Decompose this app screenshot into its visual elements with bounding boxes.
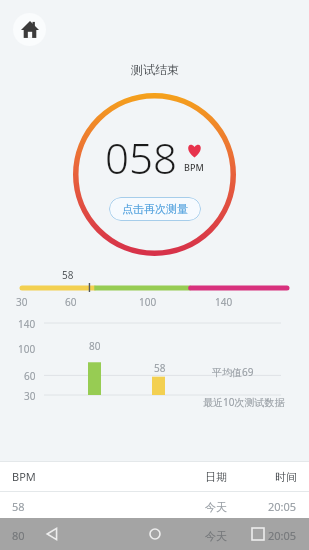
staticText: 点击再次测量: [122, 202, 188, 216]
staticText: 平均值69: [212, 365, 254, 379]
staticText: 80: [12, 528, 25, 543]
staticText: 58: [62, 268, 74, 282]
staticText: 时间: [275, 470, 297, 484]
staticText: 100: [139, 295, 157, 309]
staticText: 今天: [205, 529, 227, 543]
button[interactable]: Home: [13, 13, 46, 46]
staticText: 最近10次测试数据: [203, 395, 285, 409]
button[interactable]: 80: [0, 521, 309, 550]
staticText: 140: [18, 317, 36, 331]
staticText: 测试结束: [131, 62, 179, 77]
staticText: 58: [154, 361, 166, 375]
button[interactable]: BPM: [0, 462, 309, 491]
staticText: 60: [24, 369, 36, 383]
button[interactable]: 点击再次测量: [109, 197, 201, 221]
staticText: 今天: [205, 500, 227, 514]
staticText: 30: [16, 295, 28, 309]
staticText: 60: [65, 295, 77, 309]
staticText: 30: [24, 389, 36, 403]
staticText: 日期: [205, 470, 227, 484]
staticText: 80: [89, 339, 101, 353]
staticText: 058: [105, 129, 177, 186]
staticText: 58: [12, 499, 25, 514]
staticText: 140: [215, 295, 233, 309]
button[interactable]: Back: [37, 519, 67, 549]
staticText: BPM: [12, 469, 36, 484]
staticText: 100: [18, 342, 36, 356]
staticText: BPM: [184, 161, 204, 173]
staticText: 20:05: [268, 499, 297, 514]
button[interactable]: 58: [0, 492, 309, 521]
button[interactable]: Home: [140, 519, 170, 549]
button[interactable]: Recents: [243, 519, 273, 549]
staticText: 20:05: [268, 528, 297, 543]
